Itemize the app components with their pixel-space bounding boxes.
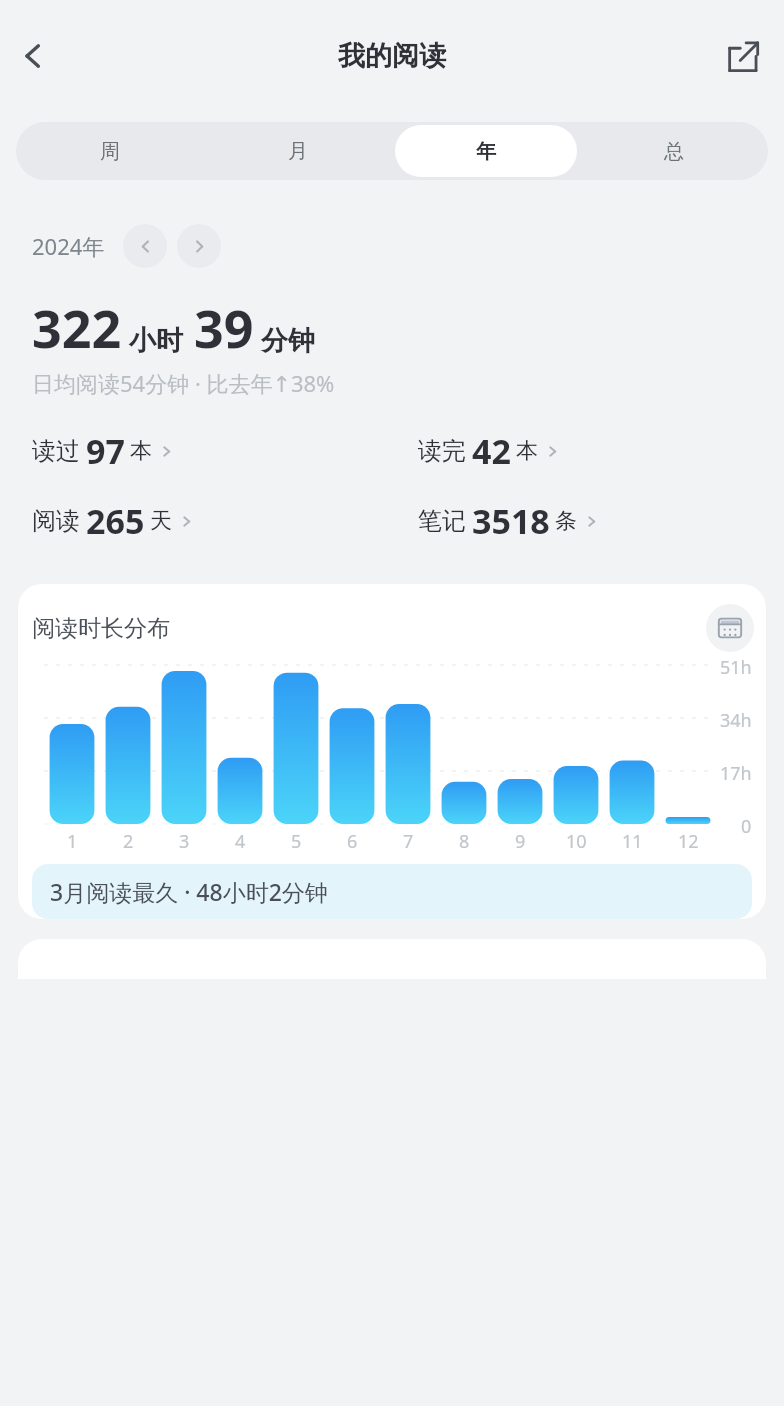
- button[interactable]: Previous year: [123, 224, 167, 268]
- staticText: 39: [194, 292, 254, 363]
- button[interactable]: Calendar: [706, 604, 754, 652]
- staticText: 42: [472, 428, 511, 474]
- staticText: 年: [476, 139, 496, 164]
- staticText: 17h: [720, 761, 752, 786]
- staticText: 7: [403, 829, 414, 854]
- button[interactable]: 读完: [418, 428, 560, 474]
- staticText: 笔记: [418, 506, 466, 536]
- staticText: 11: [622, 829, 643, 854]
- button[interactable]: 年: [395, 125, 577, 177]
- staticText: 6: [347, 829, 358, 854]
- staticText: 322: [32, 292, 122, 363]
- staticText: 读过: [32, 436, 80, 466]
- staticText: 月: [288, 139, 308, 164]
- staticText: 本: [130, 437, 152, 465]
- staticText: 97: [86, 428, 125, 474]
- staticText: 周: [100, 139, 120, 164]
- staticText: 条: [555, 507, 577, 535]
- staticText: 8: [459, 829, 470, 854]
- staticText: 我的阅读: [338, 39, 446, 73]
- staticText: 总: [664, 139, 684, 164]
- staticText: 读完: [418, 436, 466, 466]
- staticText: 3518: [472, 498, 550, 544]
- button[interactable]: 阅读: [32, 498, 194, 544]
- staticText: 阅读时长分布: [32, 614, 170, 643]
- staticText: 分钟: [261, 324, 315, 358]
- staticText: 3月阅读最久 · 48小时2分钟: [50, 876, 328, 907]
- staticText: 天: [150, 507, 172, 535]
- staticText: 0: [741, 814, 752, 839]
- staticText: 日均阅读54分钟 · 比去年↑38%: [32, 368, 335, 398]
- staticText: 3: [179, 829, 190, 854]
- staticText: 265: [86, 498, 145, 544]
- staticText: 51h: [720, 655, 752, 680]
- staticText: 1: [67, 829, 78, 854]
- button[interactable]: 笔记: [418, 498, 599, 544]
- staticText: 34h: [720, 708, 752, 733]
- staticText: 阅读: [32, 506, 80, 536]
- staticText: 12: [678, 829, 699, 854]
- button[interactable]: Next year: [177, 224, 221, 268]
- staticText: 4: [235, 829, 246, 854]
- staticText: 小时: [129, 324, 183, 358]
- button[interactable]: 总: [583, 125, 765, 177]
- staticText: 10: [566, 829, 587, 854]
- button[interactable]: 周: [19, 125, 201, 177]
- button[interactable]: 3月阅读最久 · 48小时2分钟: [32, 864, 752, 919]
- button[interactable]: 读过: [32, 428, 174, 474]
- staticText: 2024年: [32, 231, 105, 261]
- staticText: 本: [516, 437, 538, 465]
- button[interactable]: 月: [207, 125, 389, 177]
- staticText: 5: [291, 829, 302, 854]
- staticText: 9: [515, 829, 526, 854]
- button[interactable]: Back: [4, 27, 62, 85]
- staticText: 2: [123, 829, 134, 854]
- button[interactable]: Share: [714, 27, 772, 85]
